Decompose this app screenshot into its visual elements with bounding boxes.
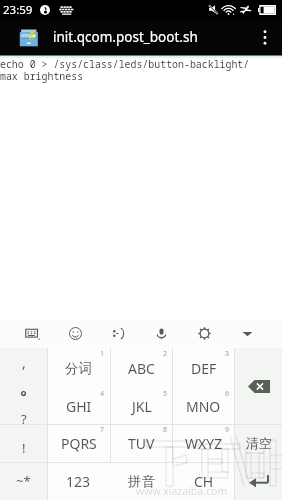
staticText: 分词 bbox=[65, 360, 92, 377]
staticText: CH bbox=[194, 472, 214, 491]
staticText: 1 bbox=[100, 349, 105, 359]
button[interactable]: WXYZ bbox=[172, 424, 235, 462]
button[interactable]: ? bbox=[0, 405, 47, 433]
staticText: 拼音 bbox=[128, 473, 155, 490]
staticText: 2 bbox=[163, 349, 168, 359]
button[interactable]: GHI bbox=[47, 388, 110, 424]
button[interactable]: Settings bbox=[192, 321, 216, 346]
staticText: , bbox=[22, 353, 26, 372]
staticText: 4 bbox=[100, 389, 105, 399]
staticText: 7 bbox=[100, 425, 105, 435]
button[interactable]: 123 bbox=[47, 462, 110, 500]
staticText: GHI bbox=[66, 397, 92, 416]
staticText: ~* bbox=[16, 472, 31, 490]
button[interactable]: 清空 bbox=[235, 424, 282, 462]
staticText: 3 bbox=[225, 349, 230, 359]
button[interactable]: ! bbox=[0, 433, 47, 462]
staticText: ? bbox=[21, 410, 27, 428]
button[interactable]: Ideographic full stop bbox=[0, 377, 47, 405]
staticText: WXYZ bbox=[185, 434, 223, 453]
staticText: MNO bbox=[186, 397, 221, 416]
button[interactable]: MNO bbox=[172, 388, 235, 424]
button[interactable]: Emoticons bbox=[106, 321, 130, 346]
staticText: echo 0 > /sys/class/leds/button-backligh… bbox=[0, 57, 250, 70]
button[interactable]: DEF bbox=[172, 348, 235, 388]
button[interactable]: Keyboard layout bbox=[20, 321, 44, 346]
button[interactable]: , bbox=[0, 348, 47, 377]
staticText: 23:59 bbox=[3, 2, 33, 18]
staticText: 9 bbox=[225, 425, 230, 435]
staticText: ABC bbox=[128, 359, 155, 378]
staticText: www.xiazaiba.com bbox=[136, 484, 228, 498]
button[interactable]: JKL bbox=[110, 388, 173, 424]
button[interactable]: 分词 bbox=[47, 348, 110, 388]
button[interactable]: TUV bbox=[110, 424, 173, 462]
staticText: ! bbox=[22, 439, 26, 457]
staticText: 清空 bbox=[246, 435, 272, 451]
button[interactable]: More options bbox=[250, 19, 280, 55]
button[interactable]: ~* bbox=[0, 462, 47, 500]
button[interactable]: ABC bbox=[110, 348, 173, 388]
button[interactable]: Backspace bbox=[235, 348, 282, 424]
staticText: 123 bbox=[66, 472, 91, 491]
staticText: 8 bbox=[163, 425, 168, 435]
button[interactable]: Voice input bbox=[149, 321, 173, 346]
staticText: init.qcom.post_boot.sh bbox=[53, 28, 198, 46]
button[interactable]: Emoji bbox=[63, 321, 87, 346]
button[interactable]: Enter bbox=[235, 462, 282, 500]
button[interactable]: Hide keyboard bbox=[235, 321, 259, 346]
staticText: max brightness bbox=[0, 69, 84, 82]
button[interactable]: 拼音 bbox=[110, 462, 173, 500]
button[interactable]: PQRS bbox=[47, 424, 110, 462]
staticText: JKL bbox=[132, 397, 152, 416]
staticText: TUV bbox=[128, 434, 155, 453]
staticText: 6 bbox=[225, 389, 230, 399]
staticText: DEF bbox=[191, 359, 217, 378]
button[interactable]: CH bbox=[172, 462, 235, 500]
staticText: PQRS bbox=[61, 434, 97, 453]
staticText: 5 bbox=[163, 389, 168, 399]
